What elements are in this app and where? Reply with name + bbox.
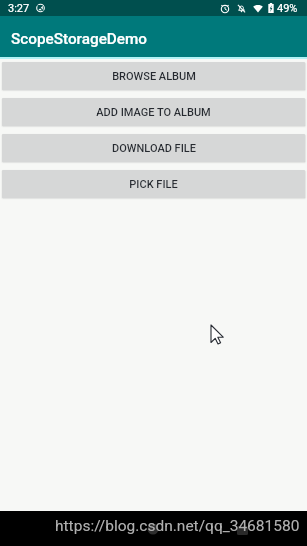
other: Data saver [36,3,45,13]
staticText: BROWSE ALBUM [112,70,196,83]
staticText: 3:27 [8,2,30,15]
staticText: DOWNLOAD FILE [112,142,196,155]
other: Battery charging [268,3,274,13]
button[interactable]: ADD IMAGE TO ALBUM [2,98,305,126]
staticText: https://blog.csdn.net/qq_34681580 [55,517,300,535]
other: Ringer silent [237,4,246,13]
button[interactable]: PICK FILE [2,170,305,198]
button[interactable]: DOWNLOAD FILE [2,134,305,162]
staticText: ADD IMAGE TO ALBUM [96,106,211,119]
staticText: PICK FILE [129,178,178,191]
other: Alarm set [220,4,230,13]
staticText: ScopeStorageDemo [11,30,148,48]
button[interactable]: BROWSE ALBUM [2,62,305,90]
other: Wi-Fi [253,4,263,13]
staticText: 49% [277,2,298,15]
